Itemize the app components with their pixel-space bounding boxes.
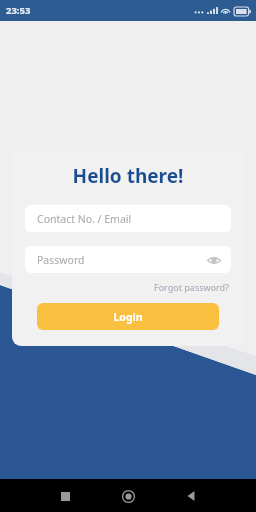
staticText: Hello there! [12,163,244,189]
button[interactable]: Show password [205,251,223,269]
button[interactable]: Password [25,246,231,273]
button[interactable]: Home [115,483,141,509]
button[interactable]: Login [37,303,219,330]
staticText: Login [113,310,143,324]
button[interactable]: Back [178,483,204,509]
button[interactable]: Contact No. / Email [25,205,231,232]
staticText: Forgot password? [153,281,229,293]
button[interactable]: Recent apps [52,483,78,509]
staticText: Contact No. / Email [37,212,132,226]
staticText: Password [37,253,85,267]
staticText: 23:53 [6,4,31,17]
button[interactable]: Forgot password? [151,280,231,294]
